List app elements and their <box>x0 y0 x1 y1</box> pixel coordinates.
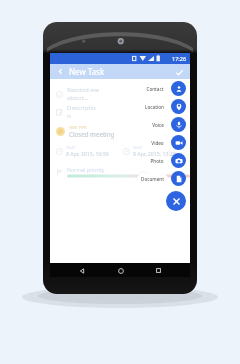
staticText: Remind me about... <box>67 86 113 102</box>
staticText: Location <box>145 104 164 110</box>
staticText: START <box>66 145 76 150</box>
button[interactable]: Back <box>55 66 66 77</box>
staticText: Document <box>141 176 164 182</box>
button[interactable]: START <box>123 145 190 157</box>
button[interactable]: Voice <box>148 117 186 132</box>
staticText: Video <box>151 140 164 146</box>
staticText: 17:26 <box>172 55 187 62</box>
button[interactable]: Back <box>75 264 88 277</box>
staticText: Voice <box>152 122 164 128</box>
button[interactable]: Close menu <box>166 191 186 211</box>
button[interactable]: Contact <box>142 81 186 96</box>
staticText: START <box>133 145 143 150</box>
staticText: Photo <box>150 158 164 164</box>
staticText: Closed meeting <box>69 130 115 138</box>
button[interactable]: Normal priority <box>56 161 190 183</box>
staticText: New Task <box>69 66 173 77</box>
button[interactable]: START <box>56 145 123 157</box>
button[interactable]: Photo <box>146 153 186 168</box>
staticText: 8 Apr, 2015, 10:56 <box>66 150 109 157</box>
staticText: Contact <box>146 86 164 92</box>
staticText: TASK TYPE <box>69 125 87 130</box>
button[interactable]: Home <box>114 264 127 277</box>
button[interactable]: Description <box>56 103 190 121</box>
button[interactable]: Recent apps <box>152 264 165 277</box>
button[interactable]: TASK TYPE <box>56 121 190 141</box>
staticText: Normal priority <box>67 166 105 173</box>
button[interactable]: Save task <box>173 66 185 78</box>
button[interactable]: Remind me about... <box>56 85 190 103</box>
button[interactable]: Location <box>141 99 186 114</box>
staticText: 9 Apr, 2015, 13:25 <box>133 150 176 157</box>
button[interactable]: Document <box>137 171 186 186</box>
button[interactable]: Video <box>147 135 186 150</box>
staticText: Description <box>67 104 97 120</box>
